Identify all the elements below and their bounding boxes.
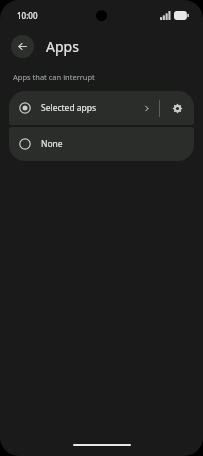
button[interactable]: Selected apps	[9, 91, 159, 125]
button[interactable]: Settings	[160, 91, 194, 125]
staticText: Apps	[46, 37, 79, 56]
staticText: 10:00	[17, 10, 38, 21]
staticText: Selected apps	[41, 102, 97, 114]
button[interactable]: Back	[11, 35, 34, 58]
staticText: Apps that can interrupt	[13, 72, 95, 82]
button[interactable]: None	[9, 127, 194, 161]
staticText: None	[41, 138, 63, 150]
